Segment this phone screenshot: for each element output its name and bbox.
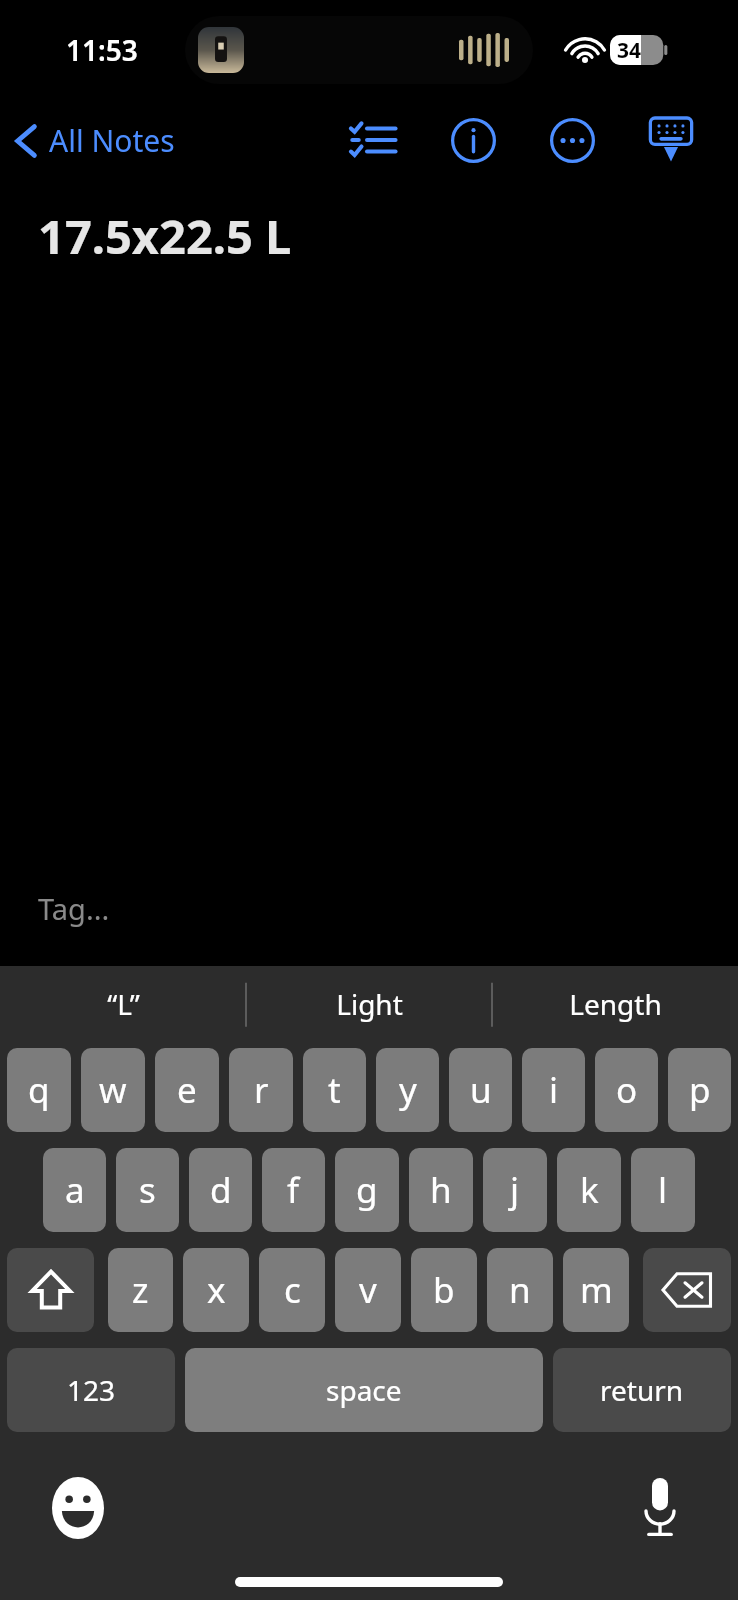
- button[interactable]: All Notes: [0, 112, 187, 169]
- button[interactable]: n: [487, 1248, 553, 1332]
- staticText: h: [430, 1166, 452, 1214]
- staticText: z: [132, 1266, 149, 1314]
- button[interactable]: z: [108, 1248, 173, 1332]
- staticText: k: [580, 1166, 599, 1214]
- button[interactable]: i: [522, 1048, 585, 1132]
- staticText: space: [326, 1371, 402, 1409]
- staticText: i: [549, 1066, 559, 1114]
- staticText: a: [65, 1166, 85, 1214]
- button[interactable]: y: [376, 1048, 439, 1132]
- button[interactable]: x: [183, 1248, 249, 1332]
- staticText: c: [284, 1266, 301, 1314]
- staticText: p: [689, 1066, 711, 1114]
- button[interactable]: Emoji: [42, 1472, 114, 1544]
- staticText: 11:53: [66, 31, 138, 69]
- staticText: j: [510, 1166, 520, 1214]
- staticText: Light: [336, 985, 403, 1023]
- other: Wi-Fi: [566, 36, 604, 64]
- button[interactable]: Backspace: [643, 1248, 731, 1332]
- button[interactable]: p: [668, 1048, 731, 1132]
- button[interactable]: k: [557, 1148, 621, 1232]
- staticText: r: [254, 1066, 269, 1114]
- button[interactable]: Info: [438, 105, 508, 175]
- button[interactable]: f: [262, 1148, 325, 1232]
- button[interactable]: “L”: [0, 966, 246, 1042]
- staticText: 17.5x22.5 L: [38, 204, 292, 268]
- staticText: y: [399, 1066, 417, 1114]
- staticText: t: [328, 1066, 341, 1114]
- staticText: Tag...: [38, 889, 110, 928]
- staticText: f: [287, 1166, 300, 1214]
- staticText: q: [28, 1066, 50, 1114]
- button[interactable]: l: [631, 1148, 695, 1232]
- staticText: 123: [67, 1371, 116, 1409]
- button[interactable]: u: [449, 1048, 512, 1132]
- staticText: x: [207, 1266, 226, 1314]
- button[interactable]: Light: [246, 966, 492, 1042]
- staticText: b: [433, 1266, 455, 1314]
- button[interactable]: o: [595, 1048, 658, 1132]
- staticText: g: [356, 1166, 378, 1214]
- button[interactable]: a: [43, 1148, 106, 1232]
- button[interactable]: e: [155, 1048, 219, 1132]
- staticText: l: [658, 1166, 668, 1214]
- button[interactable]: r: [229, 1048, 293, 1132]
- button[interactable]: j: [483, 1148, 547, 1232]
- staticText: Length: [569, 985, 662, 1023]
- button[interactable]: c: [259, 1248, 325, 1332]
- button[interactable]: b: [411, 1248, 477, 1332]
- staticText: u: [470, 1066, 492, 1114]
- staticText: v: [359, 1266, 377, 1314]
- staticText: “L”: [107, 985, 140, 1023]
- staticText: s: [139, 1166, 156, 1214]
- button[interactable]: More: [537, 105, 607, 175]
- button[interactable]: s: [116, 1148, 179, 1232]
- button[interactable]: v: [335, 1248, 401, 1332]
- button[interactable]: Length: [492, 966, 738, 1042]
- staticText: m: [580, 1266, 613, 1314]
- staticText: d: [210, 1166, 232, 1214]
- staticText: n: [509, 1266, 531, 1314]
- staticText: o: [616, 1066, 638, 1114]
- button[interactable]: m: [563, 1248, 629, 1332]
- button[interactable]: return: [553, 1348, 731, 1432]
- staticText: w: [99, 1066, 127, 1114]
- staticText: e: [177, 1066, 197, 1114]
- button[interactable]: g: [335, 1148, 399, 1232]
- staticText: return: [600, 1371, 684, 1409]
- button[interactable]: q: [7, 1048, 71, 1132]
- button[interactable]: Dictate: [624, 1472, 696, 1544]
- button[interactable]: t: [303, 1048, 366, 1132]
- button[interactable]: d: [189, 1148, 252, 1232]
- button[interactable]: Checklist: [338, 105, 408, 175]
- button[interactable]: 123: [7, 1348, 175, 1432]
- staticText: 34: [617, 36, 642, 65]
- staticText: All Notes: [49, 120, 175, 161]
- button[interactable]: Hide keyboard: [636, 105, 706, 175]
- button[interactable]: Shift: [7, 1248, 94, 1332]
- button[interactable]: space: [185, 1348, 543, 1432]
- button[interactable]: h: [409, 1148, 473, 1232]
- button[interactable]: w: [81, 1048, 145, 1132]
